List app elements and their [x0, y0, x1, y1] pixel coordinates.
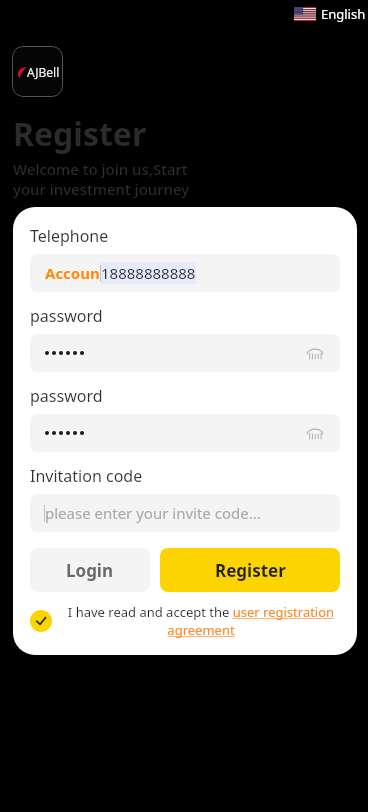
staticText: Telephone — [30, 225, 109, 247]
staticText: Accoun — [45, 263, 100, 283]
staticText: Invitation code — [30, 465, 143, 487]
button[interactable]: Show password — [30, 414, 340, 452]
button[interactable]: Show password — [303, 341, 327, 365]
button[interactable]: Accoun — [30, 254, 340, 292]
other: Accept agreement — [30, 610, 52, 632]
staticText: password — [30, 385, 103, 407]
button[interactable]: English — [292, 3, 368, 25]
button[interactable]: Show password — [303, 421, 327, 445]
staticText: I have read and accept the user registra… — [62, 603, 340, 639]
staticText: please enter your invite code... — [45, 503, 261, 523]
staticText: 18888888888 — [101, 263, 196, 283]
button[interactable]: Login — [30, 548, 150, 592]
button[interactable]: Show password — [30, 334, 340, 372]
staticText: Register — [13, 112, 147, 156]
staticText: Login — [66, 559, 114, 582]
button[interactable]: Register — [160, 548, 340, 592]
staticText: AJBell — [27, 64, 60, 80]
staticText: English — [321, 5, 366, 23]
button[interactable]: Accept agreement — [30, 603, 340, 639]
staticText: password — [30, 305, 103, 327]
staticText: Register — [215, 559, 286, 582]
button[interactable]: please enter your invite code... — [30, 494, 340, 532]
staticText: Welcome to join us,Start your investment… — [13, 159, 190, 199]
other: AJBell logo — [12, 46, 63, 97]
